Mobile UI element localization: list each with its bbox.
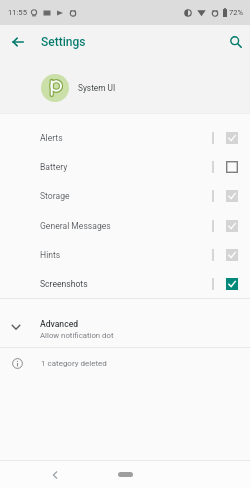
staticText: 11:55 <box>8 8 27 17</box>
staticText: Storage <box>40 191 70 201</box>
staticText: Allow notification dot <box>40 331 114 340</box>
button[interactable]: Hints <box>0 240 250 269</box>
staticText: Settings <box>41 35 86 49</box>
button[interactable]: Home <box>118 472 133 477</box>
staticText: General Messages <box>40 221 111 231</box>
button[interactable]: Back <box>3 27 33 57</box>
button[interactable]: Battery <box>0 152 250 181</box>
button[interactable]: Storage <box>0 181 250 210</box>
button[interactable]: Screenshots <box>0 269 250 298</box>
button[interactable]: General Messages <box>0 211 250 240</box>
staticText: Hints <box>40 250 61 260</box>
staticText: Screenshots <box>40 279 88 289</box>
button[interactable]: Back <box>46 466 64 484</box>
staticText: 72% <box>229 8 244 17</box>
staticText: 1 category deleted <box>41 359 107 368</box>
button[interactable]: Search <box>222 28 250 56</box>
staticText: Alerts <box>40 133 63 143</box>
staticText: Advanced <box>40 319 79 329</box>
button[interactable]: 1 category deleted <box>0 348 250 378</box>
staticText: Battery <box>40 162 68 172</box>
staticText: System UI <box>78 83 116 93</box>
button[interactable]: Alerts <box>0 123 250 152</box>
button[interactable]: Advanced <box>0 306 250 352</box>
